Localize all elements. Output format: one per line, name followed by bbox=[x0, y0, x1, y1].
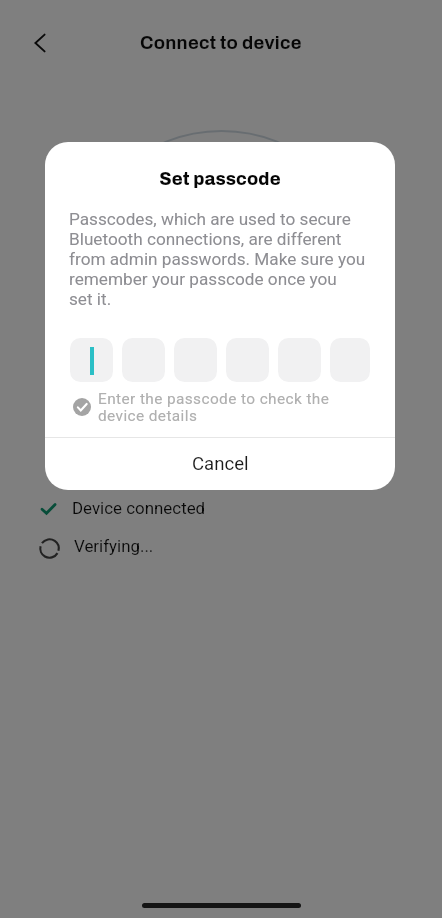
staticText: Verifying... bbox=[74, 536, 154, 556]
button[interactable]: Back bbox=[25, 28, 55, 58]
staticText: Connect to device bbox=[140, 33, 302, 53]
button[interactable]: Cancel bbox=[45, 438, 395, 490]
staticText: Passcodes, which are used to secure Blue… bbox=[69, 209, 366, 309]
staticText: Set passcode bbox=[45, 169, 395, 188]
staticText: Cancel bbox=[192, 453, 249, 475]
staticText: Enter the passcode to check the device d… bbox=[98, 390, 330, 424]
staticText: Device connected bbox=[72, 498, 206, 518]
button[interactable] bbox=[70, 338, 113, 382]
button[interactable] bbox=[330, 338, 370, 382]
